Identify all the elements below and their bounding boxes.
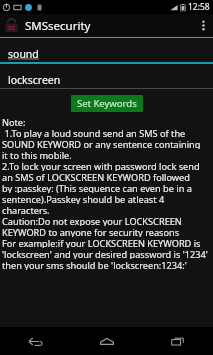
button[interactable]: Home [71,327,142,355]
button[interactable]: Set Keywords [71,95,143,112]
staticText: an SMS of LOCKSCREEN KEYWORD followed [2,171,190,182]
staticText: by :passkey: (This sequence can even be … [2,182,192,193]
staticText: Caution:Do not expose your LOCKSCREEN [2,215,182,226]
staticText: lockscreen [8,73,61,87]
staticText: SMSsecurity [25,18,91,34]
staticText: 12:58 [188,1,210,13]
button[interactable]: sound [0,46,213,64]
staticText: characters. [2,204,50,215]
staticText: then your sms should be 'lockscreen:1234… [2,259,187,270]
staticText: For example:if your LOCKSCREEN KEYWORD i… [2,237,201,248]
staticText: Set Keywords [77,97,137,110]
staticText: 2.To lock your screen with password lock… [2,160,200,171]
staticText: sentence).Passkey should be atleast 4 [2,193,165,204]
staticText: 'lockscreen' and your desired password i… [2,248,208,259]
button[interactable]: lockscreen [0,72,213,89]
staticText: 1.To play a loud sound send an SMS of th… [2,127,186,138]
staticText: SOUND KEYWORD or any sentence containing [2,138,201,149]
staticText: sound [8,47,39,61]
staticText: Note: [2,116,26,127]
staticText: it to this mobile. [2,149,72,160]
staticText: KEYWORD to anyone for security reasons [2,226,180,237]
button[interactable]: More options [193,14,213,37]
button[interactable]: Recent apps [142,327,213,355]
staticText: ss [8,23,16,33]
button[interactable]: Back [0,327,71,355]
